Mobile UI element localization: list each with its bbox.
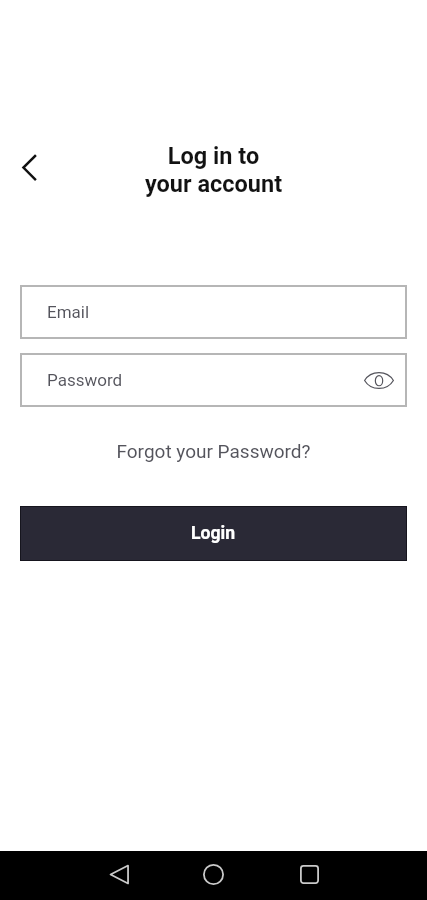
button[interactable]: Back <box>9 147 50 188</box>
staticText: Forgot your Password? <box>116 440 311 462</box>
button[interactable]: Home <box>190 851 237 898</box>
button[interactable]: Email <box>20 285 407 339</box>
button[interactable]: Login <box>20 506 407 561</box>
button[interactable]: Show password <box>361 362 397 398</box>
staticText: Log in to your account <box>0 142 427 198</box>
button[interactable]: Recents <box>286 851 333 898</box>
button[interactable]: Password <box>20 353 407 407</box>
staticText: Password <box>47 370 123 390</box>
staticText: Email <box>47 302 90 322</box>
button[interactable]: Forgot your Password? <box>0 435 427 467</box>
staticText: Login <box>191 523 236 544</box>
button[interactable]: Back <box>96 851 143 898</box>
